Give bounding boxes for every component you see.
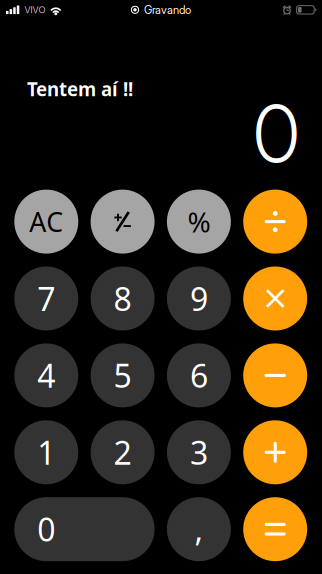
staticText: 6 [190,354,208,397]
staticText: VIVO [24,4,45,15]
staticText: 0 [37,508,55,550]
button[interactable]: 2 [91,420,155,484]
button[interactable]: 6 [167,343,231,407]
staticText: 8 [114,277,132,320]
staticText: 1 [37,431,55,474]
button[interactable]: 8 [91,266,155,330]
staticText: , [194,508,203,550]
staticText: 7 [37,277,55,320]
button[interactable]: AC [14,190,78,254]
staticText: % [187,203,210,240]
staticText: 5 [114,354,132,397]
button[interactable]: 7 [14,266,78,330]
staticText: 4 [37,354,55,397]
button[interactable]: 9 [167,266,231,330]
button[interactable]: 3 [167,420,231,484]
button[interactable]: 1 [14,420,78,484]
staticText: 3 [190,431,208,474]
button[interactable]: 4 [14,343,78,407]
staticText: 9 [190,277,208,320]
staticText: 2 [114,431,132,474]
staticText: Tentem aí !! [27,77,133,101]
button[interactable]: 0 [14,497,155,561]
button[interactable]: Toggle sign [91,190,155,254]
button[interactable]: Percent [167,190,231,254]
button[interactable]: Plus [243,420,307,484]
button[interactable]: Divide [243,190,307,254]
button[interactable]: Equals [243,497,307,561]
button[interactable]: 5 [91,343,155,407]
button[interactable]: Multiply [243,266,307,330]
staticText: Gravando [144,3,191,17]
button[interactable]: Minus [243,343,307,407]
staticText: AC [29,204,63,239]
staticText: 0 [253,86,300,181]
button[interactable]: , [167,497,231,561]
